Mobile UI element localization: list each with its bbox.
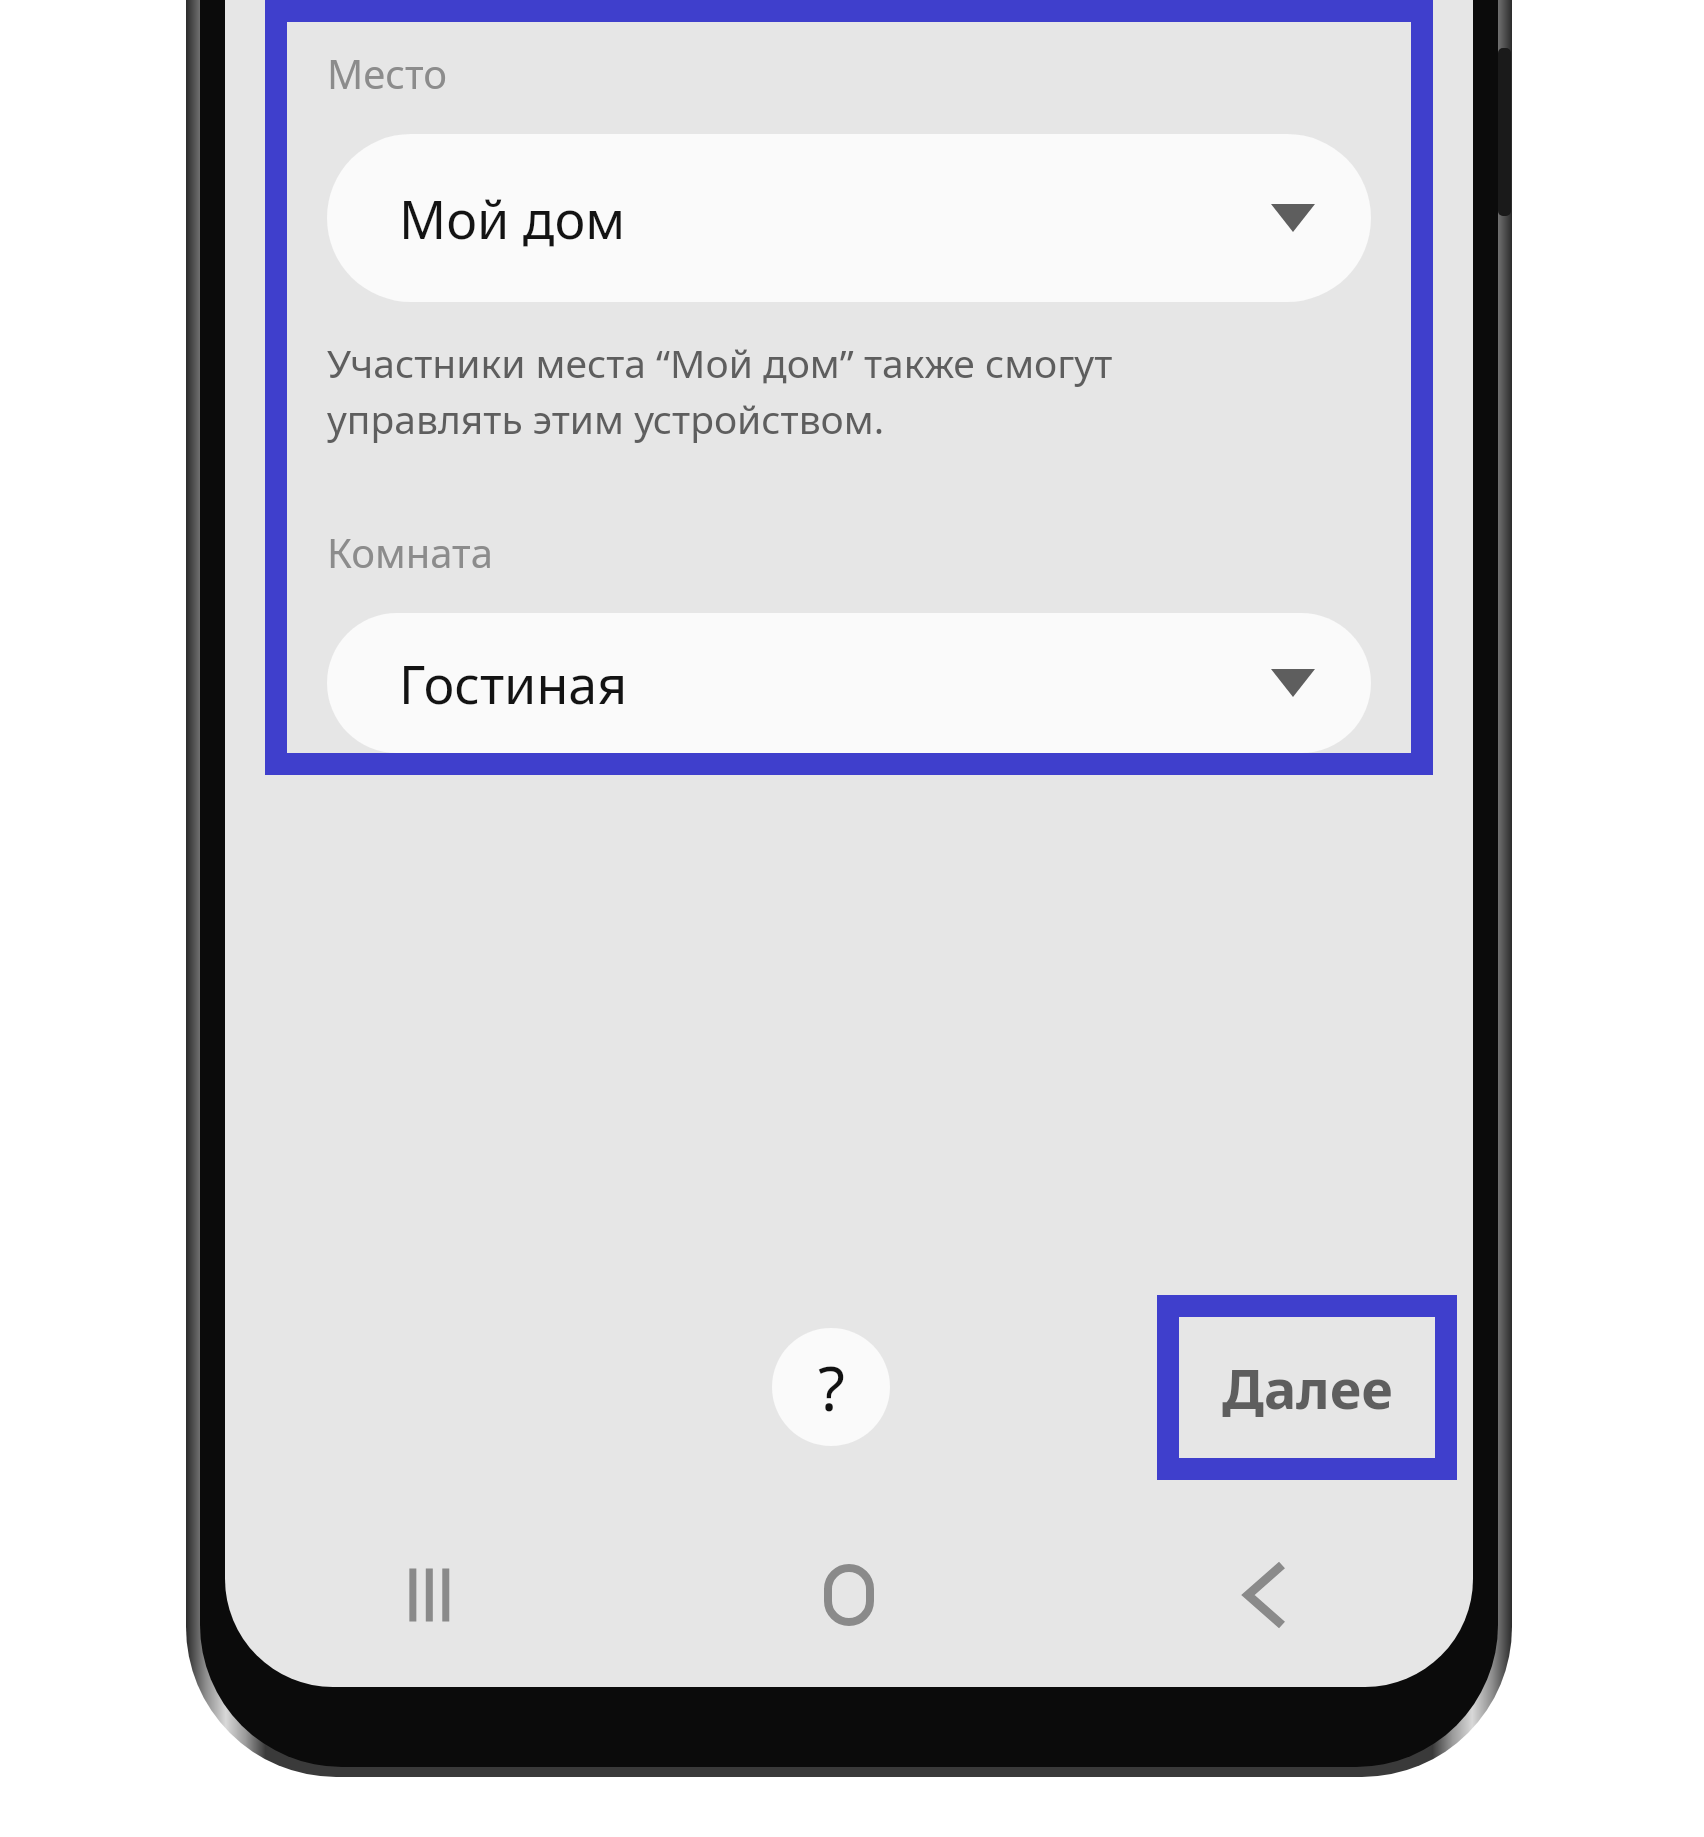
button[interactable]: Справка (772, 1328, 890, 1446)
staticText: Далее (1222, 1351, 1393, 1425)
other: Power (1498, 48, 1511, 216)
staticText: Место (327, 46, 447, 100)
button[interactable]: Назад (1057, 1502, 1473, 1687)
staticText: ? (818, 1345, 845, 1429)
button[interactable]: Гостиная (327, 613, 1371, 753)
button[interactable]: Главный экран (641, 1502, 1057, 1687)
staticText: Гостиная (399, 648, 628, 719)
staticText: Комната (327, 525, 493, 579)
staticText: Участники места “Мой дом” также смогут у… (327, 336, 1113, 445)
button[interactable]: Далее (1179, 1317, 1435, 1458)
button[interactable]: Мой дом (327, 134, 1371, 302)
button[interactable]: Недавние (225, 1502, 641, 1687)
staticText: Мой дом (399, 183, 626, 254)
